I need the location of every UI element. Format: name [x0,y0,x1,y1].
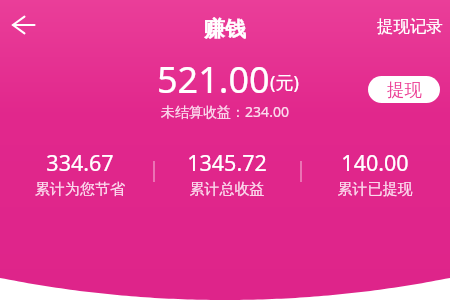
button[interactable]: Back [0,1,48,49]
staticText: 未结算收益：234.00 [0,102,450,121]
staticText: 累计总收益 [153,180,301,199]
button[interactable]: 提现记录 [375,12,445,41]
staticText: 提现记录 [377,16,443,37]
staticText: 140.00 [301,148,449,177]
staticText: 1345.72 [153,148,301,177]
staticText: 累计已提现 [301,180,449,199]
button[interactable]: 334.67 [6,146,154,202]
staticText: 334.67 [6,148,154,177]
staticText: 521.00 [157,55,270,104]
staticText: 提现 [387,79,422,101]
button[interactable]: 140.00 [301,146,449,202]
staticText: 累计为您节省 [6,180,154,199]
button[interactable]: 提现 [368,76,440,103]
staticText: (元) [270,70,299,95]
staticText: 赚钱 [204,16,246,42]
button[interactable]: 赚钱 [204,16,246,42]
button[interactable]: 1345.72 [153,146,301,202]
